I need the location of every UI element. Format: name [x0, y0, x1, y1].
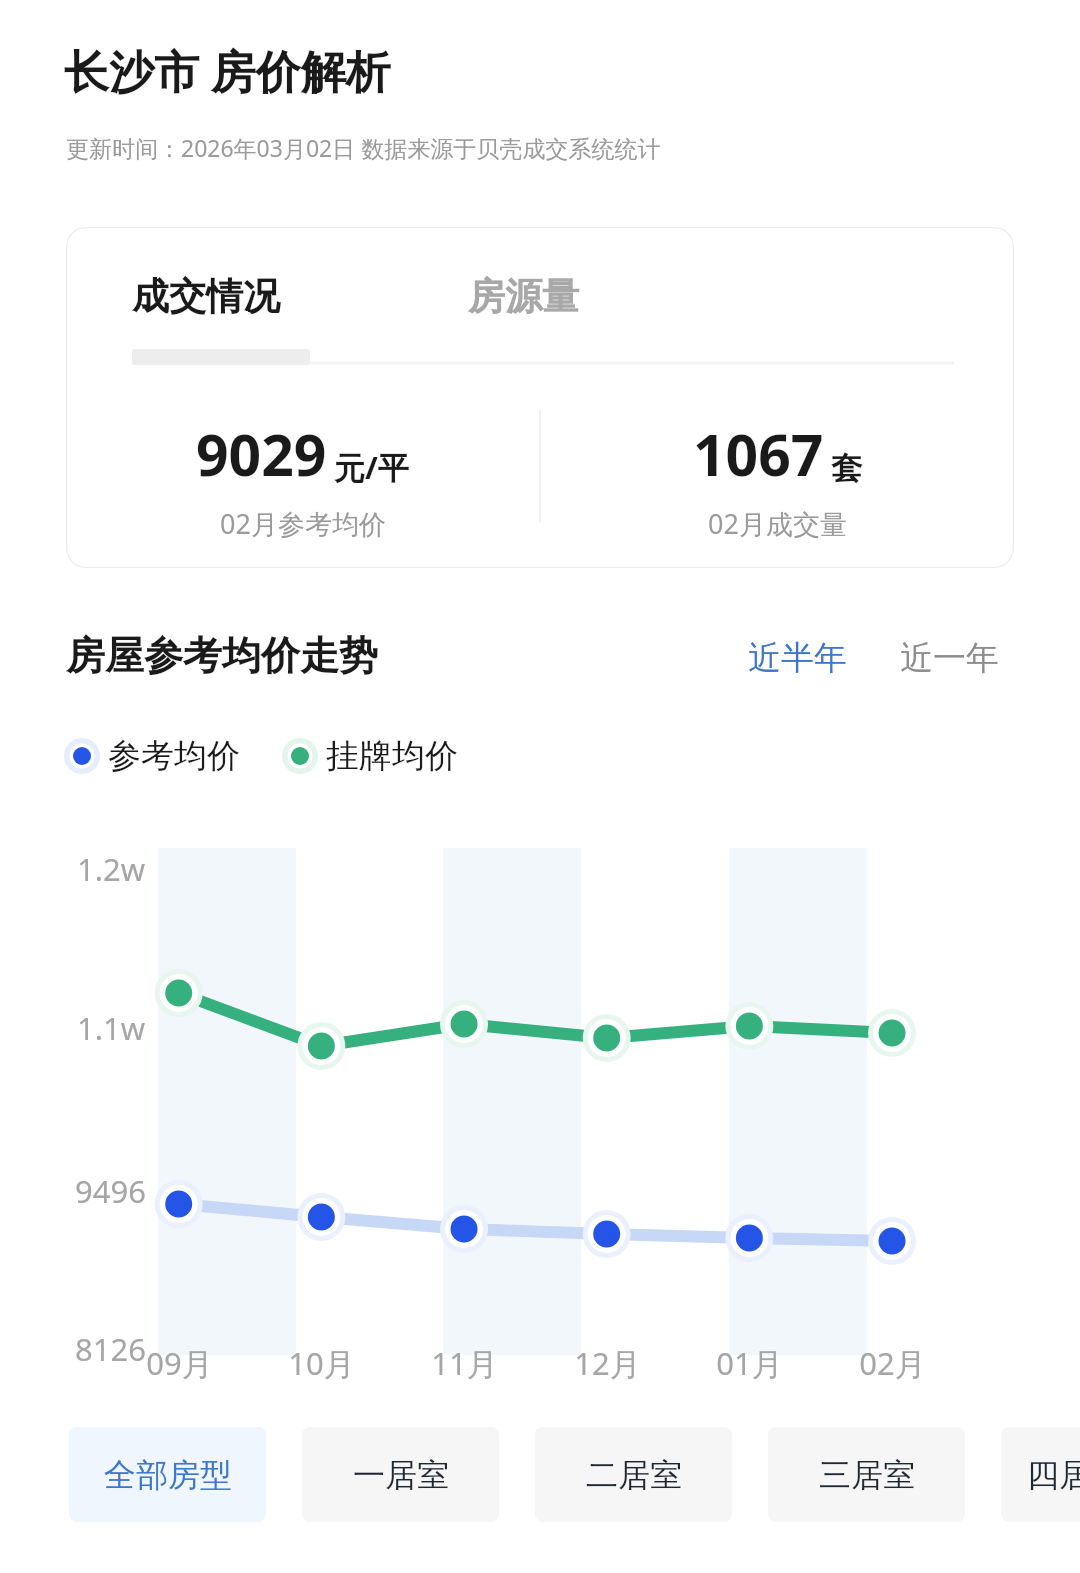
button[interactable]: 四居室 [1001, 1427, 1080, 1522]
staticText: 全部房型 [104, 1455, 232, 1495]
button[interactable]: 三居室 [768, 1427, 965, 1522]
other: 房屋参考均价走势折线图 [0, 830, 1080, 1390]
staticText: 11月 [431, 1342, 498, 1384]
button[interactable]: 全部房型 [69, 1427, 266, 1522]
staticText: 更新时间：2026年03月02日 数据来源于贝壳成交系统统计 [66, 132, 661, 163]
button[interactable]: 近一年 [900, 637, 999, 679]
button[interactable]: 成交情况 [132, 273, 280, 320]
staticText: 长沙市 房价解析 [64, 40, 391, 101]
staticText: 参考均价 [108, 735, 240, 777]
staticText: 1067 [693, 415, 824, 493]
button[interactable]: 近半年 [748, 637, 847, 679]
staticText: 9496 [75, 1170, 146, 1212]
staticText: 一居室 [353, 1455, 449, 1495]
button[interactable]: 参考均价 [64, 735, 240, 777]
staticText: 三居室 [819, 1455, 915, 1495]
button[interactable]: 挂牌均价 [282, 735, 458, 777]
staticText: 套 [831, 449, 862, 488]
staticText: 01月 [716, 1342, 783, 1384]
staticText: 9029 [196, 415, 327, 493]
staticText: 房源量 [468, 273, 579, 320]
staticText: 元/平 [334, 446, 409, 488]
staticText: 近一年 [900, 637, 999, 679]
staticText: 02月参考均价 [220, 505, 386, 542]
staticText: 1.2w [77, 848, 146, 890]
staticText: 房屋参考均价走势 [66, 631, 378, 680]
button[interactable]: 二居室 [535, 1427, 732, 1522]
button[interactable]: 房源量 [468, 273, 579, 320]
staticText: 8126 [75, 1328, 146, 1370]
staticText: 四居室 [1027, 1455, 1080, 1495]
staticText: 挂牌均价 [326, 735, 458, 777]
staticText: 10月 [288, 1342, 355, 1384]
staticText: 1.1w [77, 1007, 146, 1049]
staticText: 成交情况 [132, 273, 280, 320]
staticText: 09月 [146, 1342, 213, 1384]
staticText: 02月成交量 [708, 505, 847, 542]
staticText: 12月 [574, 1342, 641, 1384]
staticText: 二居室 [586, 1455, 682, 1495]
staticText: 近半年 [748, 637, 847, 679]
button[interactable]: 一居室 [302, 1427, 499, 1522]
staticText: 02月 [859, 1342, 926, 1384]
